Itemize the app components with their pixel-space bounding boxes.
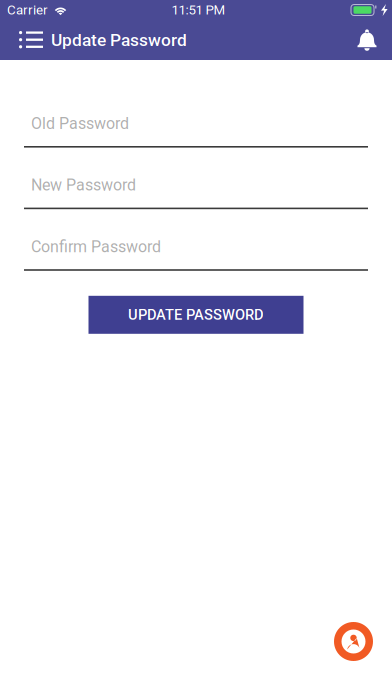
staticText: UPDATE PASSWORD (128, 306, 264, 323)
staticText: Update Password (51, 30, 187, 50)
button[interactable]: UPDATE PASSWORD (88, 296, 303, 334)
staticText: New Password (31, 176, 136, 194)
button[interactable]: Profile (334, 622, 373, 661)
button[interactable]: Notifications (342, 20, 392, 60)
staticText: Carrier (7, 2, 48, 18)
button[interactable]: Menu (0, 20, 51, 60)
staticText: 11:51 PM (171, 2, 225, 18)
staticText: Confirm Password (31, 237, 161, 256)
staticText: Old Password (31, 114, 129, 133)
